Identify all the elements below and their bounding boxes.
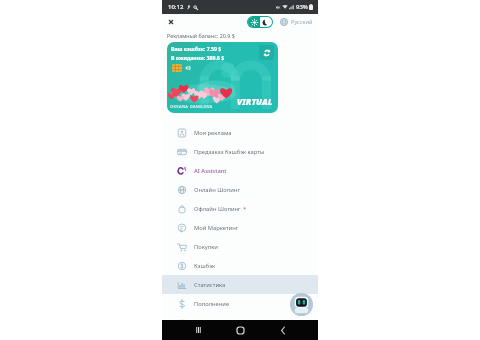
staticText: Предзаказ Кэшбэк карты — [194, 148, 265, 156]
button[interactable]: Home — [233, 323, 247, 337]
button[interactable] — [162, 313, 318, 332]
button[interactable]: Офлайн Шопинг — [162, 199, 318, 218]
button[interactable]: Recents — [191, 323, 205, 337]
button[interactable]: AI Assistant — [290, 293, 313, 316]
staticText: VIRTUAL — [237, 96, 273, 108]
button[interactable]: Back — [276, 323, 290, 337]
staticText: AI Assistant — [194, 167, 227, 175]
button[interactable]: Моя реклама — [162, 123, 318, 142]
button[interactable]: Мой Маркетинг — [162, 218, 318, 237]
button[interactable]: Theme toggle — [248, 17, 272, 27]
staticText: Русский — [291, 18, 313, 26]
button[interactable]: Статистика — [162, 275, 318, 294]
button[interactable]: Refresh — [259, 45, 274, 60]
staticText: В ожидании: 389.6 $ — [171, 54, 225, 61]
staticText: Пополнение — [194, 300, 230, 308]
button[interactable]: Пополнение — [162, 294, 318, 313]
staticText: Онлайн Шопинг — [194, 186, 240, 194]
button[interactable]: Онлайн Шопинг — [162, 180, 318, 199]
staticText: Мой Маркетинг — [194, 224, 239, 232]
staticText: Покупки — [194, 243, 218, 251]
staticText: Рекламный баланс: 20.9 $ — [167, 32, 235, 39]
staticText: Моя реклама — [194, 129, 232, 137]
staticText: Кэшбэк — [194, 262, 216, 270]
button[interactable]: AI Assistant — [162, 161, 318, 180]
button[interactable]: Предзаказ Кэшбэк карты — [162, 142, 318, 161]
button[interactable]: Close — [165, 16, 177, 28]
button[interactable]: Кэшбэк — [162, 256, 318, 275]
staticText: 10:12 — [168, 3, 184, 11]
staticText: OKSANA DANILOVA — [170, 104, 213, 109]
staticText: * — [243, 205, 247, 213]
staticText: 93% — [296, 3, 308, 11]
staticText: Офлайн Шопинг — [194, 205, 241, 213]
button[interactable]: Ваш кэшбэк: 7.59 $ — [167, 42, 278, 113]
button[interactable]: Русский — [280, 18, 313, 26]
button[interactable]: Покупки — [162, 237, 318, 256]
staticText: Статистика — [194, 281, 226, 289]
staticText: Ваш кэшбэк: 7.59 $ — [171, 45, 222, 52]
